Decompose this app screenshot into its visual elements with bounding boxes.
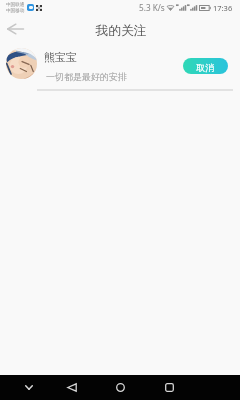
button[interactable]: Back [4,14,27,44]
staticText: 中国移动 [6,8,25,14]
button[interactable]: 取消 [183,58,228,74]
button[interactable]: Back [59,375,84,400]
staticText: 熊宝宝 [44,50,77,64]
staticText: 一切都是最好的安排 [46,71,127,82]
staticText: 中国联通 [6,2,25,8]
staticText: 我的关注 [95,23,147,39]
staticText: 17:36 [213,3,233,13]
button[interactable]: Hide keyboard [16,375,41,400]
staticText: 取消 [196,62,214,73]
staticText: 5.3 K/s [139,2,165,13]
button[interactable]: 熊宝宝 [0,44,240,90]
button[interactable]: Home [108,375,133,400]
button[interactable]: Recents [157,375,182,400]
